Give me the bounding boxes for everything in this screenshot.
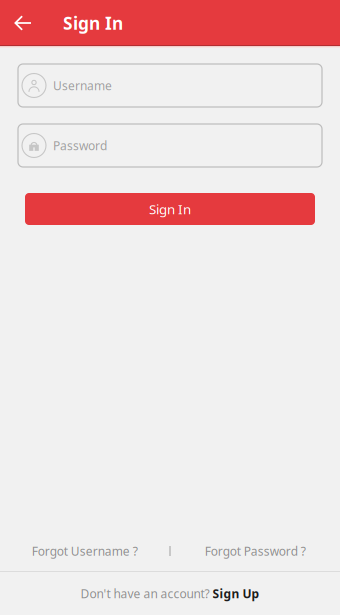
staticText: Don't have an account? <box>80 585 209 601</box>
button[interactable]: Forgot Username ? <box>0 531 169 571</box>
staticText: Username <box>53 77 112 93</box>
button[interactable]: Don't have an account? <box>0 572 340 615</box>
staticText: Forgot Password ? <box>205 543 306 559</box>
staticText: Sign In <box>63 11 123 34</box>
button[interactable]: Sign In <box>25 193 315 225</box>
button[interactable]: Forgot Password ? <box>170 531 340 571</box>
staticText: Sign In <box>149 200 191 218</box>
staticText: Forgot Username ? <box>32 543 138 559</box>
staticText: Password <box>53 137 107 153</box>
button[interactable]: Back <box>0 0 46 46</box>
staticText: Sign Up <box>212 585 259 601</box>
